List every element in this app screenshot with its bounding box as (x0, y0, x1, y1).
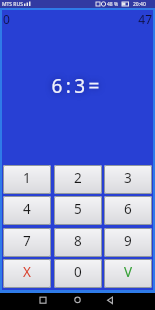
staticText: 0 (3, 11, 10, 27)
button[interactable]: 5 (54, 196, 102, 225)
button[interactable]: 9 (104, 228, 152, 257)
button[interactable]: 0 (54, 259, 102, 288)
staticText: 9 (124, 232, 132, 250)
button[interactable]: 8 (54, 228, 102, 257)
button[interactable]: 3 (104, 165, 152, 194)
button[interactable]: V (104, 259, 152, 288)
staticText: 6 : 3 = (20, 73, 130, 99)
staticText: MTS RUS (2, 1, 23, 8)
staticText: 6 (124, 200, 132, 218)
button[interactable]: 6 (104, 196, 152, 225)
staticText: 48 % (107, 1, 119, 8)
button[interactable] (51, 293, 103, 310)
staticText: 3 (124, 169, 132, 187)
button[interactable]: 2 (54, 165, 102, 194)
button[interactable]: 4 (3, 196, 51, 225)
staticText: 0 (74, 263, 82, 281)
button[interactable] (103, 293, 155, 310)
staticText: 20:40 (133, 1, 146, 8)
button[interactable]: 7 (3, 228, 51, 257)
button[interactable]: 1 (3, 165, 51, 194)
staticText: 47 (122, 11, 152, 27)
staticText: 8 (74, 232, 82, 250)
staticText: 5 (74, 200, 82, 218)
staticText: 1 (23, 169, 31, 187)
staticText: X (23, 263, 31, 281)
button[interactable] (0, 293, 51, 310)
staticText: 2 (74, 169, 82, 187)
staticText: V (124, 263, 133, 281)
staticText: 4 (23, 200, 31, 218)
staticText: 7 (23, 232, 31, 250)
button[interactable]: X (3, 259, 51, 288)
